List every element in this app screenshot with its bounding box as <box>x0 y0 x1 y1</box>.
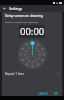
staticText: 00:00 <box>20 25 45 38</box>
staticText: CANCEL <box>38 92 49 96</box>
staticText: Repeat 1 hour <box>5 72 25 76</box>
staticText: Set the daytime for cleaning <box>5 20 38 23</box>
button[interactable]: Repeat 1 hour <box>5 71 59 77</box>
button[interactable]: Clock face hour selector <box>18 40 47 69</box>
staticText: Delay screen on cleaning <box>5 14 43 18</box>
staticText: OK <box>54 92 58 96</box>
button[interactable]: OK <box>52 91 60 97</box>
button[interactable]: CANCEL <box>36 91 51 97</box>
button[interactable]: 00:00 <box>19 25 45 38</box>
staticText: Settings <box>9 6 23 11</box>
button[interactable]: Back <box>2 6 7 11</box>
